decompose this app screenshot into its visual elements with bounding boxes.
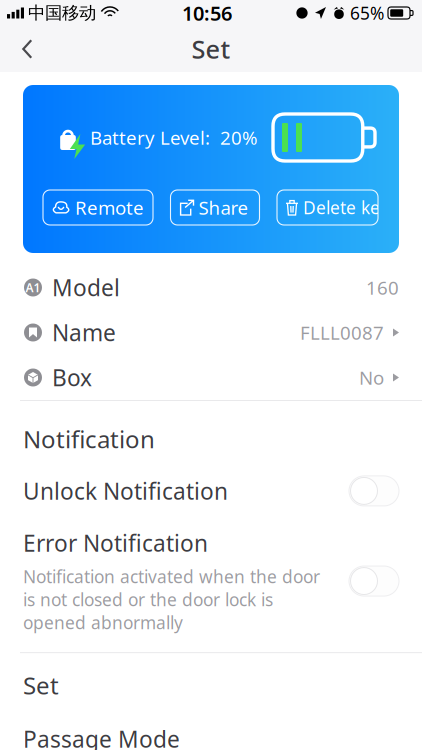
button[interactable]: Delete keys [277, 190, 378, 225]
staticText: Error Notification [23, 528, 208, 558]
staticText: Remote [75, 195, 144, 220]
staticText: 160 [366, 275, 399, 300]
staticText: Battery Level: 20% [90, 125, 258, 150]
staticText: Unlock Notification [23, 476, 228, 506]
button[interactable]: Toggle [349, 476, 399, 506]
staticText: FLLL0087 [300, 320, 384, 345]
staticText: Name [52, 317, 116, 347]
button[interactable]: Name [0, 310, 422, 355]
button[interactable]: Share [170, 190, 259, 225]
staticText: Notification [23, 423, 155, 455]
button[interactable]: Back [0, 27, 51, 70]
staticText: Model [52, 272, 120, 302]
staticText: Set [191, 32, 230, 66]
staticText: Notification activated when the door is … [23, 565, 320, 634]
staticText: Set [23, 669, 59, 701]
button[interactable]: Box [0, 355, 422, 400]
button[interactable]: Toggle [349, 566, 399, 596]
staticText: A1 [25, 279, 40, 295]
staticText: No [359, 365, 384, 390]
button[interactable]: Remote [43, 190, 153, 225]
staticText: 中国移动 [28, 2, 96, 24]
staticText: Passage Mode [23, 724, 180, 750]
staticText: 10:56 [182, 0, 232, 26]
staticText: 65% [350, 1, 384, 24]
staticText: Box [52, 362, 92, 392]
button[interactable]: A1 [0, 265, 422, 310]
staticText: Delete keys [303, 196, 396, 219]
staticText: Share [198, 195, 248, 220]
